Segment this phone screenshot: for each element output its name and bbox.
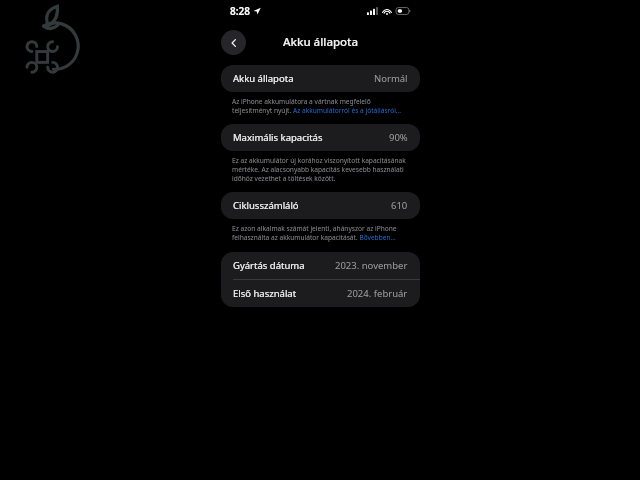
staticText: 2024. február [347,287,408,300]
staticText: 8:28 [230,4,250,18]
button[interactable]: Első használat [221,280,420,307]
staticText: Ciklusszámláló [233,199,299,212]
button[interactable]: Ciklusszámláló [221,192,420,219]
staticText: Ez azon alkalmak számát jelenti, ahánysz… [232,224,412,242]
staticText: 90% [389,131,408,144]
staticText: Ez az akkumulátor új korához viszonyítot… [232,156,412,183]
staticText: Akku állapota [233,72,294,85]
staticText: Akku állapota [283,34,359,50]
staticText: Gyártás dátuma [233,259,305,272]
button[interactable]: Akku állapota [221,65,420,92]
staticText: 610 [391,199,408,212]
staticText: Normál [374,72,408,85]
button[interactable]: Gyártás dátuma [221,252,420,279]
button[interactable]: Back [221,30,246,55]
staticText: Első használat [233,287,297,300]
button[interactable]: Maximális kapacitás [221,124,420,151]
staticText: 2023. november [335,259,408,272]
staticText: Az iPhone akkumulátora a vártnak megfele… [232,97,412,115]
staticText: Maximális kapacitás [233,131,323,144]
